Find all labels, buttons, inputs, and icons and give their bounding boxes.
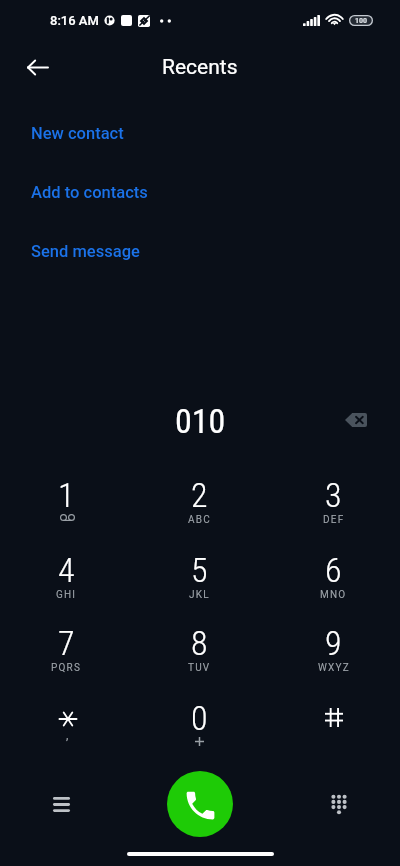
staticText: 8:16 AM <box>50 13 99 28</box>
staticText: 100 <box>355 16 368 25</box>
staticText: 1 <box>58 475 75 515</box>
staticText: JKL <box>189 589 210 601</box>
staticText: 3 <box>325 475 342 515</box>
staticText: 5 <box>191 550 208 590</box>
button[interactable]: 7 <box>0 612 133 686</box>
staticText: 9 <box>325 623 342 663</box>
button[interactable]: 6 <box>267 539 400 613</box>
button[interactable]: Send message <box>0 228 400 274</box>
button[interactable]: 0 <box>133 687 266 761</box>
button[interactable]: 1 <box>0 464 133 538</box>
staticText: New contact <box>31 124 124 143</box>
staticText: 8 <box>191 623 208 663</box>
button[interactable]: 3 <box>267 464 400 538</box>
staticText: 4 <box>58 550 75 590</box>
staticText: Send message <box>31 242 140 261</box>
button[interactable]: Dialpad <box>318 783 360 825</box>
staticText: 7 <box>58 623 75 663</box>
staticText: TUV <box>188 662 211 674</box>
staticText: Recents <box>162 55 238 80</box>
button[interactable]: 9 <box>267 612 400 686</box>
button[interactable]: 8 <box>133 612 266 686</box>
button[interactable]: Call history <box>40 783 82 825</box>
button[interactable]: New contact <box>0 110 400 156</box>
staticText: WXYZ <box>318 662 350 674</box>
staticText: PQRS <box>51 662 82 674</box>
button[interactable]: Add to contacts <box>0 169 400 215</box>
button[interactable]: Back <box>17 47 58 88</box>
staticText: Add to contacts <box>31 183 148 202</box>
staticText: MNO <box>320 589 347 601</box>
staticText: DEF <box>323 514 345 526</box>
staticText: GHI <box>56 589 77 601</box>
button[interactable]: Backspace <box>336 400 376 440</box>
button[interactable]: 2 <box>133 464 266 538</box>
staticText: ABC <box>188 514 211 526</box>
staticText: 2 <box>191 475 208 515</box>
staticText: 6 <box>325 550 342 590</box>
button[interactable]: Call <box>167 771 233 837</box>
staticText: 0 <box>191 698 208 738</box>
button[interactable]: star <box>0 687 133 761</box>
staticText: 010 <box>175 401 226 441</box>
button[interactable]: 4 <box>0 539 133 613</box>
button[interactable]: 5 <box>133 539 266 613</box>
button[interactable]: pound <box>267 687 400 761</box>
staticText: , <box>66 728 69 742</box>
